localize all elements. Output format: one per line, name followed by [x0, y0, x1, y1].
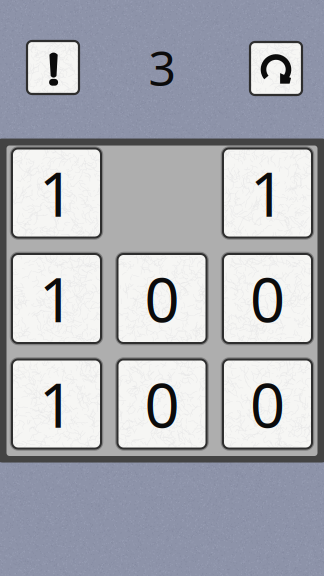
button[interactable]: Tile 1: [12, 359, 101, 448]
button[interactable]: Tile 0: [117, 254, 206, 343]
button[interactable]: Tile 0: [117, 359, 206, 448]
staticText: 1: [250, 152, 285, 234]
staticText: 0: [250, 258, 285, 339]
button[interactable]: Tile 1: [12, 254, 101, 343]
staticText: 0: [250, 363, 285, 445]
button[interactable]: Tile 0: [223, 359, 312, 448]
button[interactable]: Tile 1: [12, 148, 101, 237]
button[interactable]: Tile 1: [223, 148, 312, 237]
button[interactable]: Tile 0: [223, 254, 312, 343]
staticText: 3: [148, 36, 175, 99]
staticText: 0: [144, 363, 179, 445]
staticText: 1: [39, 363, 74, 445]
button[interactable]: Hint: [27, 41, 79, 94]
staticText: 0: [144, 258, 179, 339]
staticText: 1: [39, 152, 74, 234]
button[interactable]: Restart: [250, 42, 302, 95]
staticText: 1: [39, 258, 74, 339]
